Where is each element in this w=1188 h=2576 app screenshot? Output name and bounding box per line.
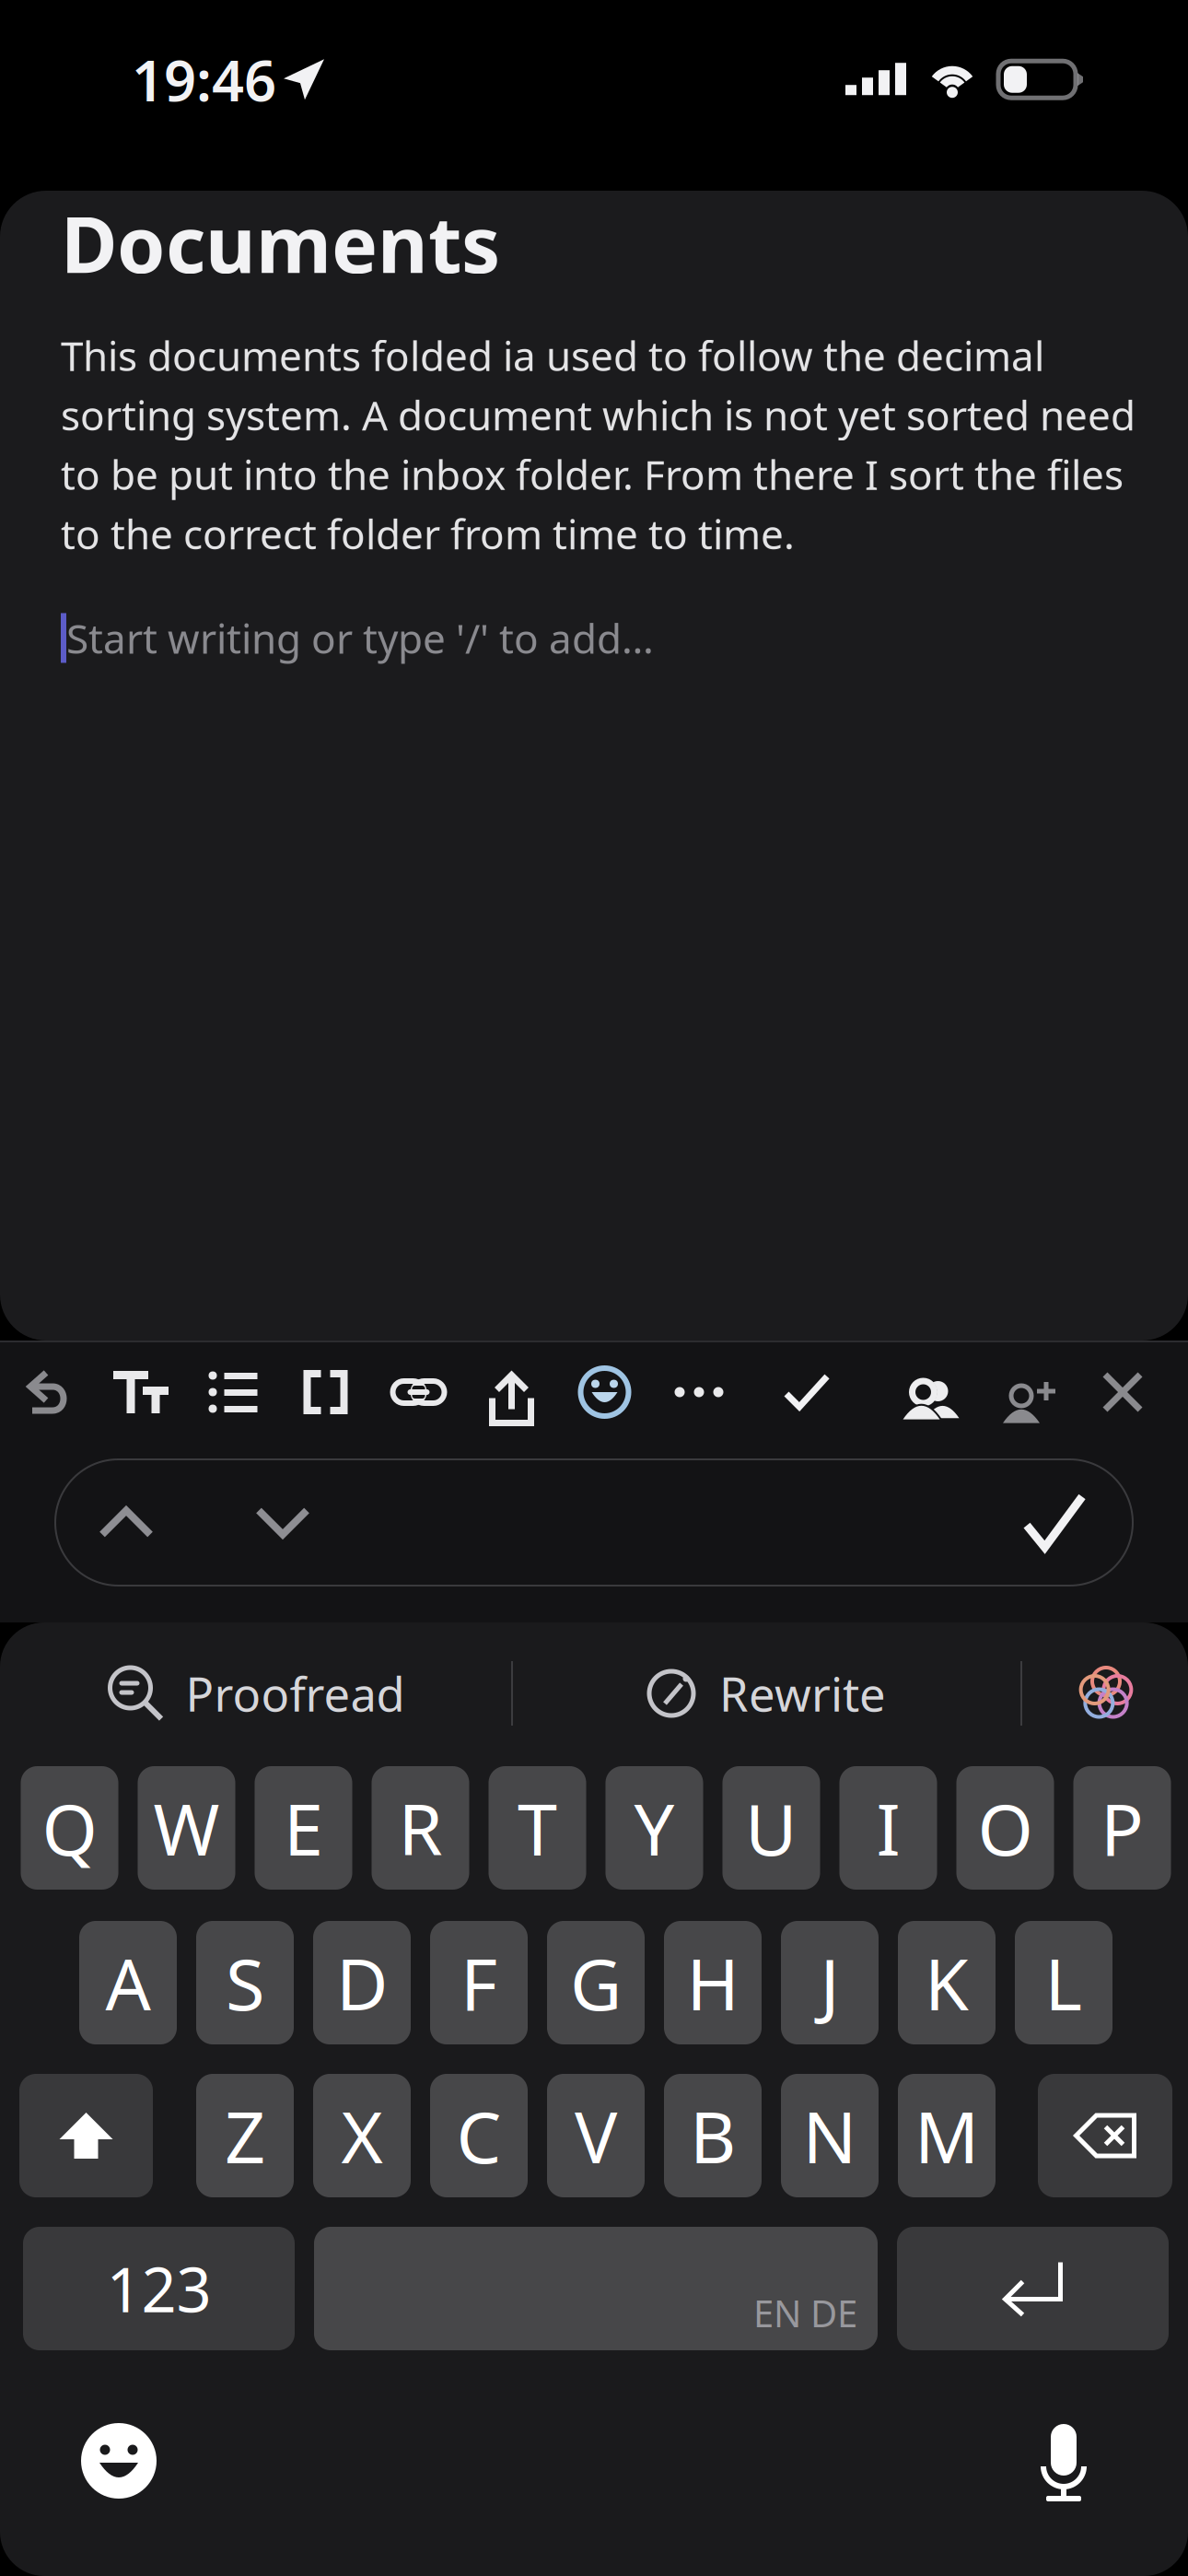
staticText: S [226,1935,264,2030]
button[interactable]: Y [606,1766,703,1890]
staticText: P [1101,1781,1144,1875]
staticText: D [336,1935,388,2030]
staticText: A [105,1935,151,2030]
staticText: I [876,1781,900,1875]
staticText: W [153,1781,220,1875]
button[interactable]: V [547,2074,645,2197]
staticText: sorting system. A document which is not … [61,388,1136,442]
button[interactable]: D [313,1921,411,2044]
button[interactable]: Insert link [372,1342,465,1442]
staticText: T [518,1781,557,1875]
button[interactable]: Bulleted list [187,1342,279,1442]
button[interactable]: G [547,1921,645,2044]
button[interactable]: R [372,1766,469,1890]
button[interactable]: More [651,1342,747,1442]
button[interactable]: Close [1072,1342,1173,1442]
button[interactable]: S [196,1921,294,2044]
staticText: 19:46 [132,42,276,117]
button[interactable]: E [255,1766,352,1890]
button[interactable]: Backspace [1038,2074,1172,2197]
staticText: V [575,2088,617,2183]
button[interactable]: B [664,2074,762,2197]
button[interactable]: Emoji [558,1342,651,1442]
staticText: K [925,1935,969,2030]
button[interactable]: space [314,2227,878,2350]
staticText: F [460,1935,497,2030]
button[interactable]: W [138,1766,235,1890]
button[interactable]: Collaborators [867,1342,971,1442]
button[interactable]: Undo [5,1342,95,1442]
button[interactable]: F [430,1921,528,2044]
staticText: L [1045,1935,1083,2030]
button[interactable]: N [781,2074,879,2197]
staticText: C [456,2088,501,2183]
staticText: Z [225,2088,265,2183]
staticText: EN DE [753,2288,857,2337]
staticText: Documents [61,192,500,294]
button[interactable]: Code block [279,1342,372,1442]
staticText: 123 [106,2248,211,2329]
staticText: N [803,2088,857,2183]
button[interactable]: K [898,1921,996,2044]
button[interactable]: L [1015,1921,1112,2044]
staticText: X [341,2088,383,2183]
button[interactable]: Apple Intelligence [1022,1624,1188,1762]
staticText: M [914,2088,979,2183]
button[interactable]: T [489,1766,586,1890]
button[interactable]: M [898,2074,996,2197]
staticText: E [284,1781,323,1875]
button[interactable]: Next [204,1459,361,1586]
staticText: U [745,1781,798,1875]
button[interactable]: Emoji keyboard [59,2401,179,2521]
button[interactable]: Previous [48,1459,204,1586]
button[interactable]: Text style [95,1342,187,1442]
staticText: to be put into the inbox folder. From th… [61,447,1124,501]
staticText: Y [634,1781,675,1875]
button[interactable]: O [956,1766,1054,1890]
button[interactable]: P [1073,1766,1171,1890]
button[interactable]: Z [196,2074,294,2197]
staticText: H [687,1935,739,2030]
button[interactable]: Share [465,1342,558,1442]
button[interactable]: Q [21,1766,118,1890]
staticText: R [398,1781,443,1875]
button[interactable]: H [664,1921,762,2044]
button[interactable]: I [839,1766,937,1890]
button[interactable]: Proofread [2,1624,511,1762]
button[interactable]: Done [985,1459,1124,1586]
staticText: Q [42,1781,97,1875]
button[interactable]: Dictate [1004,2401,1124,2521]
staticText: Start writing or type '/' to add… [66,611,654,665]
button[interactable]: Rewrite [513,1624,1020,1762]
button[interactable]: return [897,2227,1169,2350]
button[interactable]: C [430,2074,528,2197]
button[interactable]: Invite person [971,1342,1072,1442]
button[interactable]: Numbers [23,2227,295,2350]
staticText: This documents folded ia used to follow … [61,328,1044,382]
staticText: G [570,1935,622,2030]
staticText: Proofread [186,1662,405,1724]
staticText: to the correct folder from time to time. [61,507,795,560]
staticText: Rewrite [719,1662,886,1724]
button[interactable]: Done [747,1342,867,1442]
button[interactable]: Shift [19,2074,153,2197]
button[interactable]: X [313,2074,411,2197]
button[interactable]: J [781,1921,879,2044]
staticText: O [978,1781,1033,1875]
staticText: B [690,2088,736,2183]
button[interactable]: U [722,1766,820,1890]
button[interactable]: A [79,1921,177,2044]
staticText: J [820,1935,839,2030]
